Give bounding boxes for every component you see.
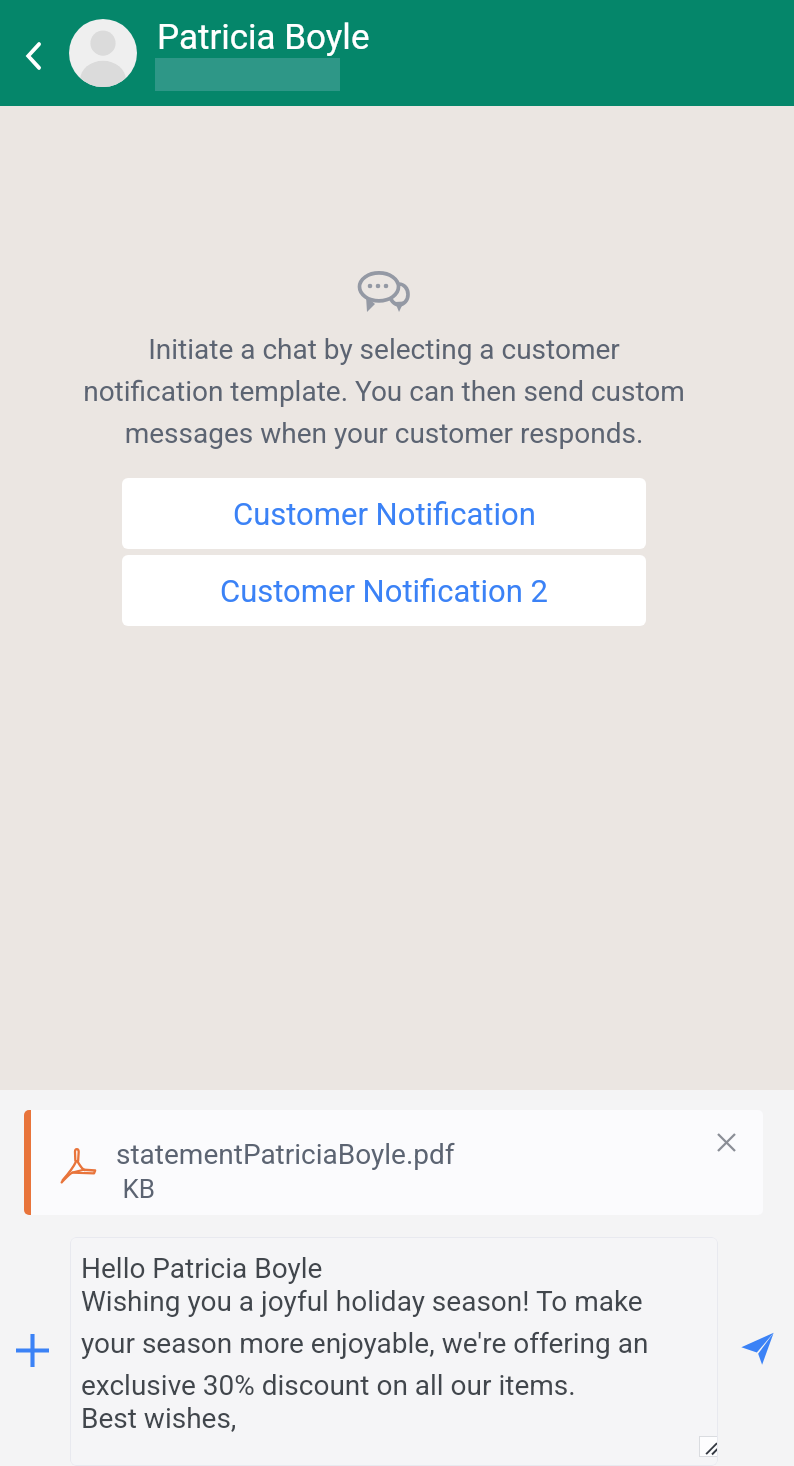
button[interactable]: statementPatriciaBoyle.pdf xyxy=(24,1110,763,1215)
button[interactable]: Send xyxy=(725,1316,790,1381)
staticText: Patricia Boyle xyxy=(157,17,370,58)
button[interactable]: Add attachment xyxy=(0,1318,64,1382)
staticText: Wishing you a joyful holiday season! To … xyxy=(81,1285,673,1402)
staticText: Customer Notification 2 xyxy=(220,573,548,609)
staticText: statementPatriciaBoyle.pdf xyxy=(116,1138,455,1171)
button[interactable]: Remove attachment xyxy=(698,1114,754,1170)
staticText: Initiate a chat by selecting a customer … xyxy=(78,333,690,450)
staticText: KB xyxy=(116,1174,155,1204)
staticText: Customer Notification xyxy=(233,496,536,532)
button[interactable]: Customer Notification xyxy=(122,478,646,549)
staticText: Hello Patricia Boyle xyxy=(81,1252,323,1285)
staticText: Best wishes, xyxy=(81,1402,237,1435)
button[interactable]: Back xyxy=(0,0,69,106)
button[interactable]: Customer Notification 2 xyxy=(122,555,646,626)
button[interactable]: Hello Patricia Boyle xyxy=(70,1237,718,1466)
